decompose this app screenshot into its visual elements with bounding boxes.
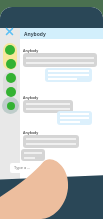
button[interactable] <box>23 53 97 67</box>
staticText: Anybody <box>23 48 39 53</box>
button[interactable] <box>45 68 92 82</box>
button[interactable] <box>21 149 45 161</box>
button[interactable]: Channel <box>6 59 16 69</box>
staticText: Anybody <box>23 130 39 135</box>
button[interactable]: Active channel <box>3 43 17 70</box>
button[interactable]: Channel <box>6 73 16 83</box>
button[interactable] <box>57 111 92 125</box>
button[interactable]: Channel <box>5 45 15 55</box>
staticText: Anybody <box>23 95 39 100</box>
button[interactable] <box>23 100 73 113</box>
staticText: Anybody <box>24 31 46 38</box>
button[interactable]: Type a ... <box>10 163 95 173</box>
button[interactable]: Close <box>6 28 13 35</box>
staticText: Type a ... <box>14 165 31 170</box>
button[interactable]: Channel <box>6 87 16 97</box>
button[interactable] <box>23 135 79 148</box>
